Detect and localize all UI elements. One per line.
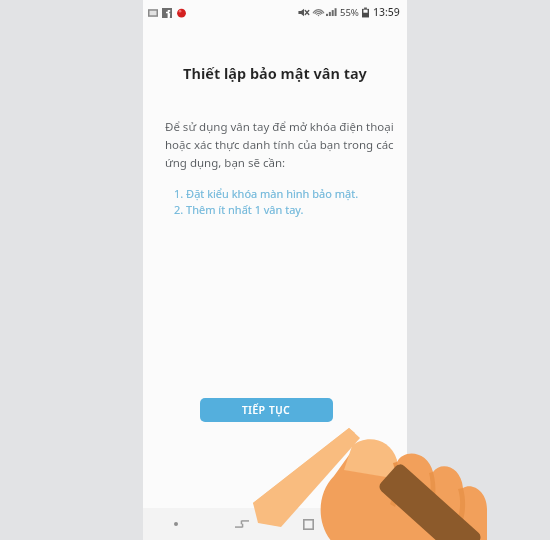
button[interactable]: Home <box>293 509 323 539</box>
staticText: Thiết lập bảo mật vân tay <box>143 63 407 83</box>
staticText: 55% <box>340 6 359 19</box>
staticText: TIẾP TỤC <box>242 403 291 417</box>
button[interactable]: TIẾP TỤC <box>200 398 333 422</box>
staticText: 13:59 <box>373 5 400 19</box>
staticText: 1. Đặt kiểu khóa màn hình bảo mật. 2. Th… <box>174 186 359 218</box>
button[interactable]: Menu <box>161 509 191 539</box>
button[interactable]: Recent apps <box>227 509 257 539</box>
staticText: Để sử dụng vân tay để mở khóa điện thoại… <box>165 119 394 170</box>
